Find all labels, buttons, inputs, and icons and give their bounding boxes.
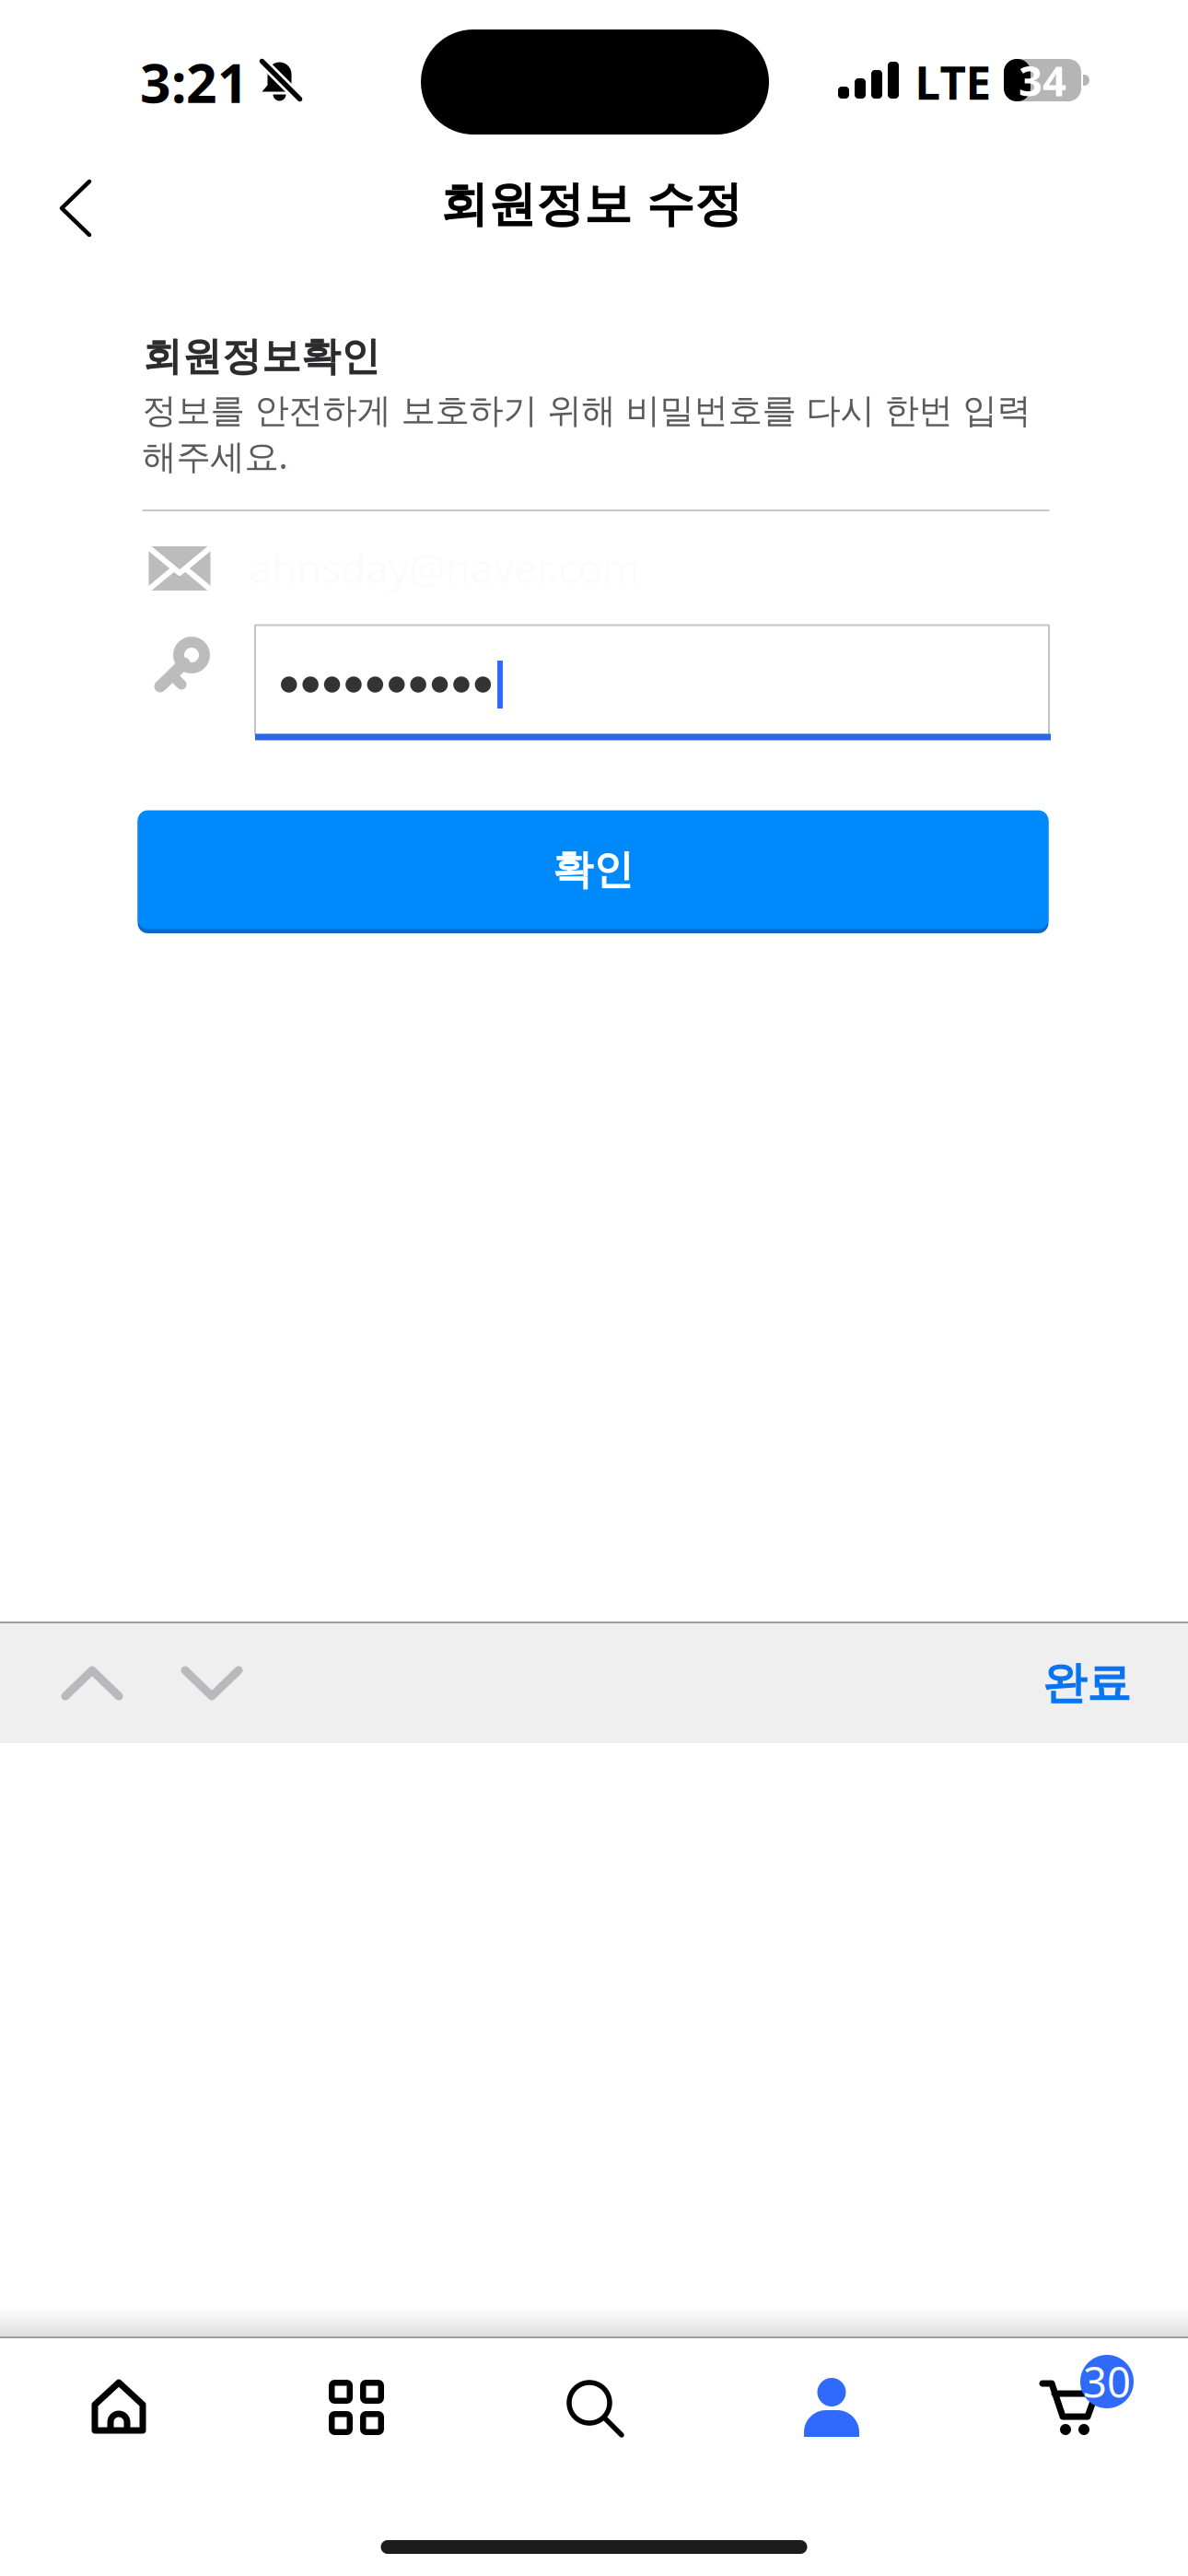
button[interactable]: 완료 bbox=[984, 1623, 1131, 1743]
button[interactable]: Next field bbox=[152, 1623, 272, 1743]
button[interactable]: Home bbox=[0, 2338, 238, 2476]
staticText: LTE bbox=[915, 52, 991, 112]
button[interactable]: Categories bbox=[238, 2338, 475, 2476]
staticText: 확인 bbox=[553, 845, 634, 895]
staticText: 회원정보확인 bbox=[143, 332, 380, 381]
staticText: 30 bbox=[1083, 2354, 1131, 2409]
staticText: 정보를 안전하게 보호하기 위해 비밀번호를 다시 한번 입력해주세요. bbox=[142, 390, 1031, 478]
staticText: 34 bbox=[1019, 52, 1066, 108]
staticText: 회원정보 수정 bbox=[440, 175, 742, 234]
button[interactable]: Previous field bbox=[32, 1623, 152, 1743]
button[interactable]: Search bbox=[475, 2338, 713, 2476]
staticText: 완료 bbox=[1042, 1656, 1131, 1710]
button[interactable]: 확인 bbox=[138, 808, 1048, 932]
button[interactable]: My page bbox=[713, 2338, 950, 2476]
staticText: 3:21 bbox=[140, 46, 249, 118]
button[interactable]: Back bbox=[22, 155, 129, 262]
button[interactable]: Cart, 30 items bbox=[950, 2338, 1188, 2476]
